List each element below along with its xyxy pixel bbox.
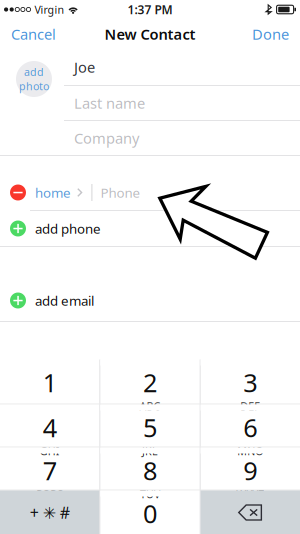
staticText: Joe <box>74 57 95 77</box>
staticText: 2 <box>143 365 157 399</box>
button[interactable]: add phone <box>0 211 300 246</box>
staticText: 1 <box>43 365 57 399</box>
staticText: Company <box>74 128 139 148</box>
staticText: add email <box>35 292 94 309</box>
staticText: 0 <box>143 496 157 530</box>
button[interactable]: 2 <box>100 359 200 404</box>
staticText: add phone <box>35 220 101 237</box>
staticText: add <box>24 65 44 79</box>
staticText: JKL <box>142 444 158 458</box>
staticText: MNO <box>237 444 263 458</box>
staticText: Phone <box>100 184 140 201</box>
staticText: PQRS <box>36 487 63 501</box>
staticText: Done <box>252 24 289 44</box>
button[interactable]: Cancel <box>0 19 67 49</box>
button[interactable]: 6 <box>200 404 300 447</box>
button[interactable]: Add photo <box>16 61 52 97</box>
button[interactable]: 4 <box>0 404 99 447</box>
staticText: Virgin <box>35 2 65 17</box>
button[interactable]: 0 <box>100 490 200 534</box>
staticText: 9 <box>243 453 257 487</box>
button[interactable]: add email <box>0 280 300 321</box>
staticText: GHI <box>40 444 60 458</box>
staticText: TUV <box>140 487 160 501</box>
button[interactable]: 7 <box>0 447 99 490</box>
staticText: photo <box>19 79 49 93</box>
button[interactable]: 1 <box>0 359 99 404</box>
staticText: 4 <box>43 410 57 444</box>
staticText: + ✳ # <box>30 502 70 523</box>
button[interactable]: 9 <box>200 447 300 490</box>
staticText: 6 <box>243 410 257 444</box>
staticText: ABC <box>139 399 160 413</box>
staticText: home <box>35 184 71 201</box>
button[interactable]: Done <box>241 19 300 49</box>
button[interactable]: home <box>26 174 82 210</box>
staticText: 7 <box>43 453 57 487</box>
button[interactable]: 8 <box>100 447 200 490</box>
staticText: 8 <box>143 453 157 487</box>
button[interactable]: 3 <box>200 359 300 404</box>
staticText: Last name <box>74 93 145 113</box>
staticText: New Contact <box>104 24 195 44</box>
staticText: Cancel <box>11 24 56 44</box>
staticText: 5 <box>143 410 157 444</box>
staticText: DEF <box>240 399 260 413</box>
button[interactable]: 5 <box>100 404 200 447</box>
button[interactable]: + ✳ # <box>0 490 99 534</box>
staticText: 3 <box>243 365 257 399</box>
staticText: WXYZ <box>236 487 264 501</box>
button[interactable]: Delete <box>200 490 300 534</box>
staticText: 1:37 PM <box>127 1 172 17</box>
